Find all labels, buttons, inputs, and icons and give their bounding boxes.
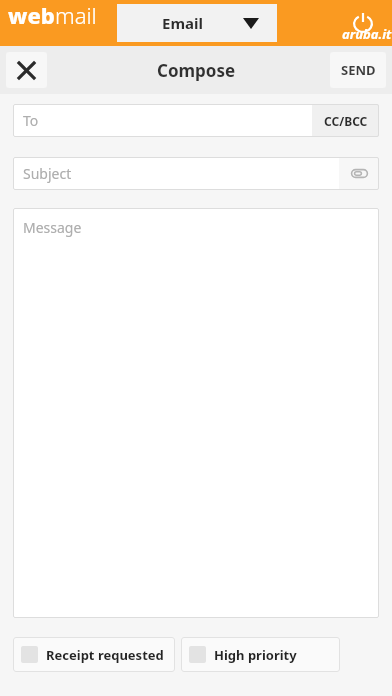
staticText: Compose xyxy=(157,59,236,82)
staticText: CC/BCC xyxy=(324,113,368,129)
button[interactable]: Message xyxy=(13,208,379,618)
button[interactable]: Subject xyxy=(13,157,339,190)
button[interactable]: Receipt requested xyxy=(13,637,175,672)
staticText: web xyxy=(8,0,55,30)
button[interactable]: Log out xyxy=(346,6,380,40)
button[interactable]: To xyxy=(13,104,312,137)
button[interactable]: Email xyxy=(117,4,277,42)
staticText: Message xyxy=(23,218,82,237)
staticText: aruba.it xyxy=(342,25,392,41)
staticText: To xyxy=(23,111,39,130)
button[interactable]: Close xyxy=(6,52,47,88)
staticText: High priority xyxy=(214,646,297,664)
button[interactable]: High priority xyxy=(181,637,340,672)
button[interactable]: Attach file xyxy=(339,157,379,190)
button[interactable]: SEND xyxy=(330,52,386,88)
staticText: SEND xyxy=(341,61,376,79)
button[interactable]: CC/BCC xyxy=(312,104,379,137)
staticText: Subject xyxy=(23,164,72,183)
button[interactable]: web xyxy=(8,0,392,46)
staticText: Email xyxy=(162,13,203,33)
staticText: mail xyxy=(55,0,97,30)
staticText: Receipt requested xyxy=(46,646,164,664)
